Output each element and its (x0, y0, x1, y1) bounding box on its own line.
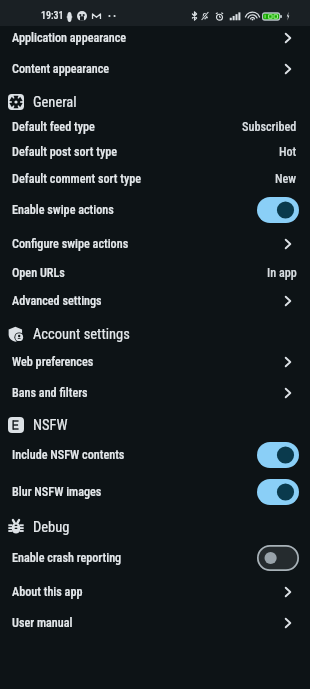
staticText: New (275, 172, 297, 186)
button[interactable]: Advanced settings (0, 286, 310, 316)
staticText: Enable crash reporting (12, 551, 122, 565)
staticText: General (33, 94, 77, 111)
staticText: Bans and filters (12, 386, 88, 400)
button[interactable]: Configure swipe actions (0, 228, 310, 259)
staticText: Content appearance (12, 62, 110, 76)
staticText: About this app (12, 585, 83, 599)
button[interactable]: Web preferences (0, 347, 310, 376)
button[interactable]: Include NSFW contents (0, 438, 310, 472)
staticText: Hot (279, 145, 297, 159)
other: Toggle on (257, 442, 299, 468)
staticText: Debug (33, 519, 70, 536)
other: Open (278, 234, 298, 254)
button[interactable]: Content appearance (0, 54, 310, 84)
button[interactable]: Open URLs (0, 259, 310, 287)
staticText: Include NSFW contents (12, 448, 125, 462)
staticText: Default feed type (12, 120, 95, 134)
other: Open (278, 28, 298, 48)
staticText: 19:31 (41, 10, 64, 22)
button[interactable]: About this app (0, 576, 310, 607)
button[interactable]: Default feed type (0, 114, 310, 139)
button[interactable]: Application appearance (0, 24, 310, 51)
staticText: Configure swipe actions (12, 237, 129, 251)
staticText: Account settings (33, 326, 130, 343)
staticText: In app (267, 266, 297, 280)
other: Toggle on (257, 197, 299, 223)
staticText: User manual (12, 616, 73, 630)
button[interactable]: Default post sort type (0, 139, 310, 165)
staticText: Open URLs (12, 266, 65, 280)
staticText: Subscribed (242, 120, 297, 134)
staticText: NSFW (33, 417, 68, 434)
button[interactable]: Bans and filters (0, 377, 310, 408)
other: Toggle on (257, 479, 299, 505)
other: Toggle off (257, 545, 299, 571)
button[interactable]: Blur NSFW images (0, 474, 310, 509)
staticText: Application appearance (12, 31, 127, 45)
button[interactable]: Enable swipe actions (0, 193, 310, 226)
other: Open (278, 352, 298, 372)
other: Open (278, 59, 298, 79)
other: Open (278, 383, 298, 403)
staticText: Default post sort type (12, 145, 117, 159)
button[interactable]: Enable crash reporting (0, 541, 310, 574)
other: Open (278, 613, 298, 633)
other: Open (278, 291, 298, 311)
button[interactable]: User manual (0, 607, 310, 638)
other: Open (278, 582, 298, 602)
staticText: Blur NSFW images (12, 485, 102, 499)
staticText: Web preferences (12, 355, 94, 369)
staticText: Advanced settings (12, 294, 102, 308)
button[interactable]: Default comment sort type (0, 164, 310, 193)
staticText: Enable swipe actions (12, 203, 114, 217)
staticText: Default comment sort type (12, 172, 141, 186)
